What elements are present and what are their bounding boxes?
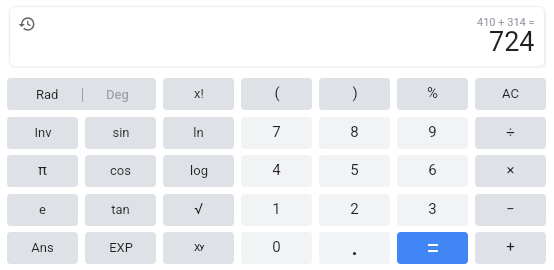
staticText: 9 — [428, 123, 437, 141]
button[interactable]: 1 — [241, 194, 312, 226]
staticText: + — [506, 238, 515, 256]
button[interactable]: 4 — [241, 155, 312, 187]
staticText: Inv — [34, 125, 52, 140]
staticText: √ — [194, 200, 203, 218]
staticText: ln — [193, 125, 204, 140]
staticText: 2 — [350, 200, 359, 218]
button[interactable]: History — [12, 9, 42, 39]
button[interactable]: 9 — [397, 117, 468, 149]
staticText: × — [506, 161, 515, 179]
button[interactable]: √ — [163, 194, 234, 226]
staticText: x — [194, 239, 201, 254]
staticText: cos — [110, 163, 131, 178]
staticText: 3 — [428, 200, 437, 218]
button[interactable]: EXP — [85, 232, 156, 264]
staticText: Deg — [106, 87, 129, 102]
staticText: tan — [111, 202, 130, 217]
button[interactable]: x! — [163, 78, 234, 110]
button[interactable]: e — [7, 194, 78, 226]
button[interactable]: 6 — [397, 155, 468, 187]
staticText: AC — [502, 86, 519, 101]
button[interactable]: ( — [241, 78, 312, 110]
button[interactable]: − — [475, 194, 546, 226]
button[interactable]: sin — [85, 117, 156, 149]
staticText: 4 — [272, 161, 281, 179]
staticText: Ans — [31, 240, 54, 255]
staticText: EXP — [109, 240, 133, 255]
button[interactable]: Ans — [7, 232, 78, 264]
button[interactable]: AC — [475, 78, 546, 110]
staticText: log — [190, 163, 208, 178]
staticText: ÷ — [506, 123, 515, 141]
button[interactable]: % — [397, 78, 468, 110]
staticText: sin — [112, 125, 130, 140]
staticText: ) — [352, 84, 358, 102]
staticText: 0 — [272, 238, 281, 256]
staticText: ( — [274, 84, 280, 102]
staticText: % — [427, 84, 438, 102]
staticText: 724 — [489, 26, 535, 58]
staticText: 410 + 314 = — [477, 16, 535, 29]
button[interactable]: Rad — [7, 78, 156, 110]
staticText: e — [39, 202, 46, 217]
button[interactable]: cos — [85, 155, 156, 187]
button[interactable]: π — [7, 155, 78, 187]
staticText: Rad — [36, 87, 59, 102]
button[interactable]: tan — [85, 194, 156, 226]
staticText: 6 — [428, 161, 437, 179]
staticText: π — [38, 161, 47, 179]
staticText: 1 — [272, 200, 281, 218]
button[interactable]: Inv — [7, 117, 78, 149]
button[interactable]: 7 — [241, 117, 312, 149]
staticText: 7 — [272, 123, 281, 141]
button[interactable]: ) — [319, 78, 390, 110]
button[interactable]: + — [475, 232, 546, 264]
staticText: 8 — [350, 123, 359, 141]
button[interactable]: 2 — [319, 194, 390, 226]
staticText: x! — [194, 86, 204, 101]
staticText: 5 — [350, 161, 359, 179]
button[interactable]: 0 — [241, 232, 312, 264]
button[interactable]: 3 — [397, 194, 468, 226]
button[interactable]: log — [163, 155, 234, 187]
button[interactable]: ÷ — [475, 117, 546, 149]
staticText: − — [506, 200, 515, 218]
button[interactable]: 5 — [319, 155, 390, 187]
button[interactable] — [319, 232, 390, 264]
button[interactable]: x — [163, 232, 234, 264]
button[interactable]: 8 — [319, 117, 390, 149]
button[interactable]: × — [475, 155, 546, 187]
button[interactable]: ln — [163, 117, 234, 149]
button[interactable] — [397, 232, 468, 264]
